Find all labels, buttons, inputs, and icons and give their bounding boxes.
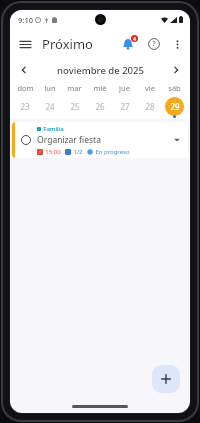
button[interactable]: Next month xyxy=(166,60,186,80)
staticText: sáb xyxy=(168,83,181,93)
staticText: 27 xyxy=(120,101,130,112)
button[interactable]: Help xyxy=(142,32,166,56)
staticText: lun xyxy=(44,83,56,93)
staticText: 25 xyxy=(70,101,80,112)
button[interactable]: Add task xyxy=(152,365,180,393)
staticText: mar xyxy=(67,83,82,93)
button[interactable]: 29 xyxy=(162,94,187,118)
staticText: mié xyxy=(93,83,107,93)
staticText: vie xyxy=(145,83,155,93)
button[interactable]: Previous month xyxy=(14,60,34,80)
button[interactable]: Mark complete xyxy=(12,122,188,158)
staticText: 28 xyxy=(145,101,155,112)
button[interactable]: Notifications xyxy=(116,32,140,56)
staticText: 29 xyxy=(170,101,180,112)
staticText: 4 xyxy=(133,36,136,42)
staticText: dom xyxy=(17,83,34,93)
button[interactable]: More options xyxy=(166,33,188,55)
staticText: Próximo xyxy=(42,35,93,53)
button[interactable]: 24 xyxy=(37,94,62,118)
staticText: 15:00 xyxy=(45,148,61,156)
button[interactable]: 28 xyxy=(137,94,162,118)
staticText: 9:10 xyxy=(18,15,33,25)
button[interactable]: 26 xyxy=(87,94,112,118)
staticText: Familia xyxy=(43,125,64,133)
button[interactable]: 27 xyxy=(112,94,137,118)
staticText: En progreso xyxy=(95,148,130,156)
button[interactable]: 23 xyxy=(13,94,37,118)
staticText: Organizar fiesta xyxy=(37,134,101,146)
button[interactable]: Menu xyxy=(14,33,36,55)
staticText: ? xyxy=(152,39,156,49)
staticText: 24 xyxy=(45,101,55,112)
button[interactable]: Mark complete xyxy=(18,132,34,148)
staticText: 23 xyxy=(20,101,30,112)
staticText: noviembre de 2025 xyxy=(57,64,144,77)
button[interactable]: 25 xyxy=(62,94,87,118)
button[interactable]: Expand xyxy=(170,133,184,147)
staticText: 26 xyxy=(95,101,105,112)
staticText: jue xyxy=(119,83,130,93)
staticText: 1/2 xyxy=(73,148,83,156)
